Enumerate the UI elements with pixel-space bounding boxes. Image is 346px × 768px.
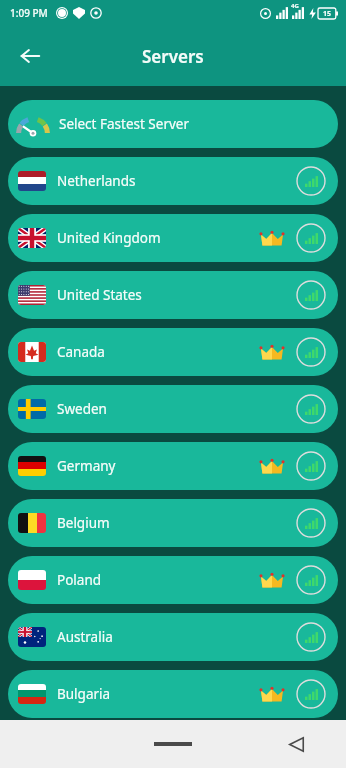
button[interactable]: Sweden: [8, 385, 338, 433]
staticText: Servers: [142, 45, 204, 68]
staticText: United States: [57, 286, 142, 304]
button[interactable]: Netherlands: [8, 157, 338, 205]
button[interactable]: Home: [143, 727, 203, 761]
staticText: United Kingdom: [57, 229, 161, 247]
button[interactable]: Bulgaria: [8, 670, 338, 718]
button[interactable]: Australia: [8, 613, 338, 661]
button[interactable]: United Kingdom: [8, 214, 338, 262]
staticText: 15: [323, 9, 332, 19]
staticText: Australia: [57, 628, 113, 646]
staticText: 4G: [291, 2, 299, 10]
staticText: Belgium: [57, 514, 110, 532]
staticText: Sweden: [57, 400, 107, 418]
staticText: Select Fastest Server: [59, 115, 190, 133]
staticText: Bulgaria: [57, 685, 111, 703]
button[interactable]: Poland: [8, 556, 338, 604]
button[interactable]: Back: [8, 34, 52, 78]
staticText: Germany: [57, 457, 116, 475]
staticText: Canada: [57, 343, 105, 361]
button[interactable]: Canada: [8, 328, 338, 376]
staticText: 1:09 PM: [10, 6, 48, 20]
button[interactable]: United States: [8, 271, 338, 319]
button[interactable]: Select Fastest Server: [8, 100, 338, 148]
staticText: Poland: [57, 571, 102, 589]
button[interactable]: Germany: [8, 442, 338, 490]
button[interactable]: Belgium: [8, 499, 338, 547]
button[interactable]: Back: [276, 724, 316, 764]
staticText: Netherlands: [57, 172, 136, 190]
